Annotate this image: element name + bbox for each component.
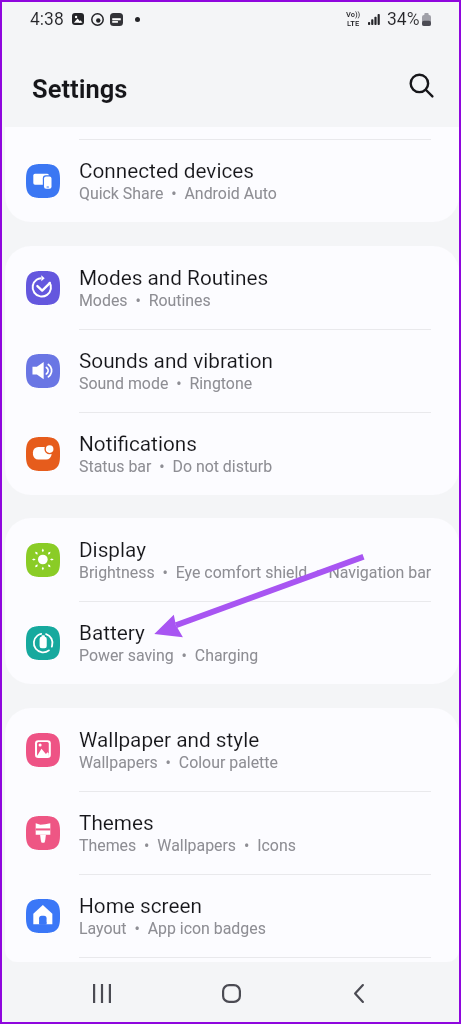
- staticText: Layout • App icon badges: [79, 919, 266, 938]
- staticText: Home screen: [79, 894, 202, 918]
- staticText: Display: [79, 538, 147, 562]
- staticText: LTE: [347, 19, 360, 28]
- button[interactable]: Back: [330, 964, 388, 1022]
- staticText: Quick Share • Android Auto: [79, 184, 277, 203]
- staticText: 4:38: [30, 9, 64, 30]
- button[interactable]: Recents: [73, 964, 131, 1022]
- button[interactable]: Display: [5, 518, 459, 601]
- button[interactable]: Themes: [5, 791, 459, 874]
- button[interactable]: Connected devices: [5, 139, 459, 222]
- staticText: Settings: [32, 74, 128, 104]
- staticText: 34%: [387, 9, 420, 30]
- button[interactable]: Home screen: [5, 874, 459, 957]
- staticText: Wallpapers • Colour palette: [79, 753, 278, 772]
- staticText: Wallpaper and style: [79, 728, 260, 752]
- staticText: Vo)): [346, 10, 361, 19]
- button[interactable]: Notifications: [5, 412, 459, 495]
- button[interactable]: Sounds and vibration: [5, 329, 459, 412]
- staticText: Status bar • Do not disturb: [79, 457, 273, 476]
- staticText: Modes • Routines: [79, 291, 211, 310]
- staticText: Brightness • Eye comfort shield • Naviga…: [79, 563, 432, 582]
- staticText: Themes • Wallpapers • Icons: [79, 836, 296, 855]
- staticText: Sound mode • Ringtone: [79, 374, 253, 393]
- button[interactable]: Home: [202, 964, 260, 1022]
- button[interactable]: Modes and Routines: [5, 246, 459, 329]
- staticText: Battery: [79, 621, 145, 645]
- staticText: Connected devices: [79, 159, 255, 183]
- staticText: Sounds and vibration: [79, 349, 273, 373]
- staticText: Modes and Routines: [79, 266, 269, 290]
- button[interactable]: Search: [400, 64, 444, 108]
- staticText: Power saving • Charging: [79, 646, 259, 665]
- button[interactable]: Wallpaper and style: [5, 708, 459, 791]
- button[interactable]: Battery: [5, 601, 459, 684]
- staticText: Notifications: [79, 432, 197, 456]
- staticText: Themes: [79, 811, 154, 835]
